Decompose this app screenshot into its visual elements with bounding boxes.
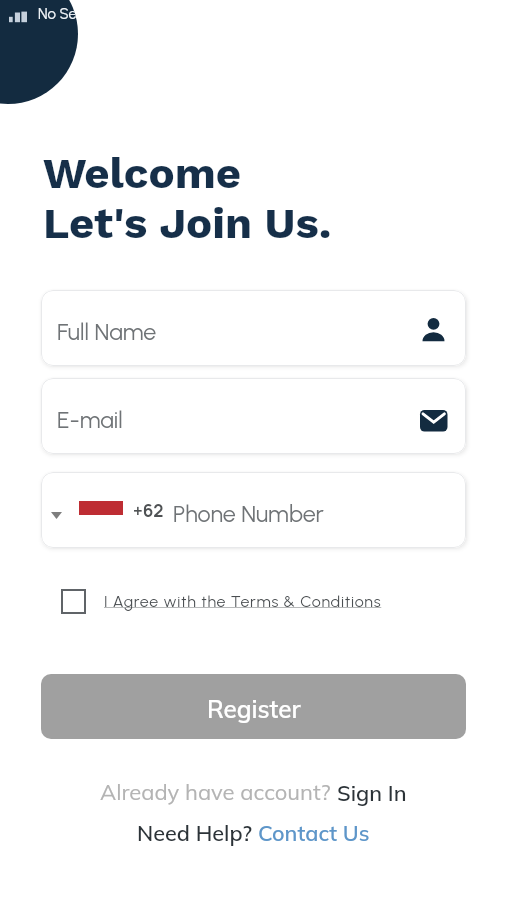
staticText: Contact Us xyxy=(258,819,370,846)
staticText: Let's Join Us. xyxy=(43,197,332,248)
staticText: I Agree with the Terms & Conditions xyxy=(104,592,382,611)
other: Person xyxy=(422,318,445,342)
staticText: Need Help? xyxy=(137,819,258,846)
button[interactable]: Contact Us xyxy=(258,819,370,846)
button[interactable]: E-mail xyxy=(41,378,466,454)
staticText: No Service xyxy=(38,5,109,23)
staticText: E-mail xyxy=(57,406,123,434)
button[interactable]: Full Name xyxy=(41,290,466,366)
staticText: Register xyxy=(207,694,301,724)
staticText: +62 xyxy=(133,499,164,522)
button[interactable]: Register xyxy=(41,674,466,739)
staticText: Phone Number xyxy=(173,500,324,528)
button[interactable]: Sign In xyxy=(337,779,407,806)
staticText: Sign In xyxy=(337,779,407,806)
button[interactable]: I Agree with the Terms & Conditions xyxy=(61,589,382,614)
other: Email xyxy=(420,410,448,432)
staticText: Welcome xyxy=(43,147,242,198)
button[interactable]: +62 xyxy=(41,472,466,548)
staticText: Full Name xyxy=(57,318,157,346)
staticText: Already have account? xyxy=(100,778,337,806)
